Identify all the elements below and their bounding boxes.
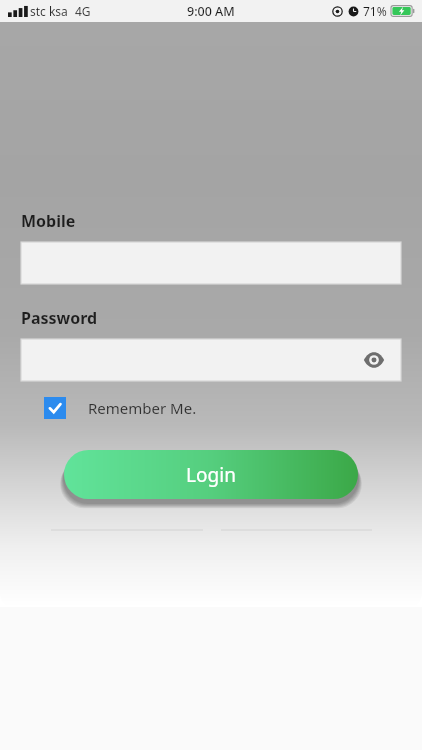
staticText: Login: [186, 462, 236, 488]
button[interactable]: [21, 242, 401, 284]
button[interactable]: Login: [64, 450, 358, 499]
button[interactable]: Show password: [357, 343, 391, 377]
button[interactable]: Remember Me.: [44, 397, 197, 419]
staticText: 71%: [363, 3, 387, 19]
staticText: Mobile: [21, 210, 76, 232]
staticText: Password: [21, 307, 98, 329]
button[interactable]: Show password: [21, 339, 401, 381]
staticText: 4G: [75, 3, 91, 19]
staticText: Remember Me.: [88, 398, 197, 418]
staticText: 9:00 AM: [187, 3, 235, 20]
staticText: stc ksa: [30, 3, 68, 19]
